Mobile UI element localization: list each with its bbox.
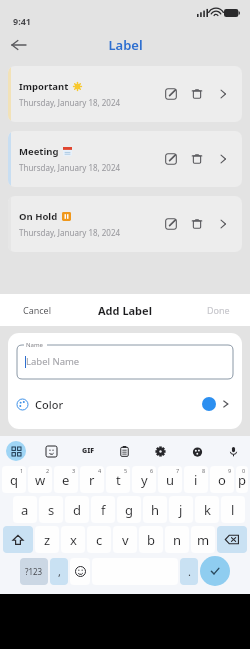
- button[interactable]: p: [236, 466, 248, 493]
- button[interactable]: GIF: [77, 440, 99, 462]
- button[interactable]: h: [143, 496, 167, 523]
- button[interactable]: Period: [180, 558, 198, 585]
- staticText: 8: [202, 467, 206, 474]
- button[interactable]: Backspace: [217, 526, 247, 553]
- staticText: c: [96, 531, 103, 549]
- button[interactable]: g: [117, 496, 141, 523]
- button[interactable]: Shift: [3, 526, 33, 553]
- staticText: q: [10, 471, 18, 489]
- staticText: u: [166, 471, 175, 489]
- staticText: Thursday, January 18, 2024: [19, 162, 121, 173]
- staticText: n: [173, 531, 182, 549]
- staticText: b: [147, 531, 155, 549]
- staticText: Label Name: [26, 355, 80, 368]
- button[interactable]: Emoji: [70, 558, 90, 585]
- staticText: Color: [35, 397, 64, 412]
- button[interactable]: x: [61, 526, 85, 553]
- button[interactable]: Color: [17, 387, 233, 421]
- staticText: Important: [19, 80, 69, 93]
- staticText: 3: [72, 467, 76, 474]
- staticText: l: [231, 501, 235, 519]
- staticText: e: [62, 471, 70, 489]
- button[interactable]: Themes: [186, 440, 208, 462]
- button[interactable]: d: [65, 496, 89, 523]
- button[interactable]: Open: [210, 211, 236, 237]
- button[interactable]: i: [184, 466, 208, 493]
- button[interactable]: l: [221, 496, 245, 523]
- button[interactable]: Comma: [50, 558, 68, 585]
- staticText: y: [141, 471, 148, 489]
- button[interactable]: z: [35, 526, 59, 553]
- staticText: h: [151, 501, 160, 519]
- button[interactable]: Back: [6, 32, 32, 58]
- staticText: r: [89, 471, 95, 489]
- staticText: 0: [242, 467, 246, 474]
- button[interactable]: m: [191, 526, 215, 553]
- button[interactable]: r: [80, 466, 104, 493]
- staticText: Meeting: [19, 145, 59, 158]
- staticText: 9: [228, 467, 232, 474]
- button[interactable]: Done: [207, 304, 230, 316]
- button[interactable]: a: [13, 496, 37, 523]
- staticText: 6: [150, 467, 154, 474]
- staticText: x: [70, 531, 77, 549]
- staticText: Thursday, January 18, 2024: [19, 97, 121, 108]
- staticText: p: [238, 471, 246, 489]
- button[interactable]: Clipboard: [113, 440, 135, 462]
- button[interactable]: v: [113, 526, 137, 553]
- staticText: Thursday, January 18, 2024: [19, 227, 121, 238]
- staticText: d: [73, 501, 81, 519]
- button[interactable]: On Hold: [8, 196, 242, 252]
- staticText: s: [48, 501, 55, 519]
- button[interactable]: u: [158, 466, 182, 493]
- staticText: 2: [46, 467, 50, 474]
- button[interactable]: j: [169, 496, 193, 523]
- button[interactable]: ?123: [20, 558, 48, 585]
- staticText: k: [204, 501, 211, 519]
- button[interactable]: t: [106, 466, 130, 493]
- staticText: ?123: [25, 566, 43, 577]
- button[interactable]: Voice input: [222, 440, 244, 462]
- button[interactable]: Settings: [149, 440, 171, 462]
- button[interactable]: Edit: [158, 146, 184, 172]
- staticText: f: [101, 501, 106, 519]
- staticText: m: [197, 531, 210, 549]
- button[interactable]: Enter: [200, 556, 230, 586]
- staticText: g: [125, 501, 133, 519]
- button[interactable]: o: [210, 466, 234, 493]
- button[interactable]: n: [165, 526, 189, 553]
- staticText: On Hold: [19, 210, 58, 223]
- button[interactable]: Cancel: [23, 304, 52, 316]
- button[interactable]: Delete: [184, 146, 210, 172]
- button[interactable]: y: [132, 466, 156, 493]
- staticText: ,: [58, 564, 61, 579]
- button[interactable]: Meeting: [8, 131, 242, 187]
- staticText: z: [44, 531, 51, 549]
- staticText: o: [218, 471, 226, 489]
- button[interactable]: e: [54, 466, 78, 493]
- staticText: 1: [20, 467, 24, 474]
- button[interactable]: Edit: [158, 81, 184, 107]
- button[interactable]: b: [139, 526, 163, 553]
- button[interactable]: f: [91, 496, 115, 523]
- staticText: 7: [176, 467, 180, 474]
- staticText: a: [21, 501, 29, 519]
- button[interactable]: Delete: [184, 81, 210, 107]
- button[interactable]: Apps: [6, 441, 26, 461]
- button[interactable]: Delete: [184, 211, 210, 237]
- button[interactable]: Important: [8, 66, 242, 122]
- staticText: Add Label: [98, 303, 152, 318]
- staticText: t: [116, 471, 121, 489]
- button[interactable]: Open: [210, 146, 236, 172]
- button[interactable]: k: [195, 496, 219, 523]
- button[interactable]: Open: [210, 81, 236, 107]
- button[interactable]: s: [39, 496, 63, 523]
- button[interactable]: Stickers: [40, 440, 62, 462]
- button[interactable]: c: [87, 526, 111, 553]
- button[interactable]: q: [2, 466, 26, 493]
- staticText: GIF: [82, 446, 95, 456]
- button[interactable]: Edit: [158, 211, 184, 237]
- button[interactable]: w: [28, 466, 52, 493]
- staticText: w: [35, 471, 46, 489]
